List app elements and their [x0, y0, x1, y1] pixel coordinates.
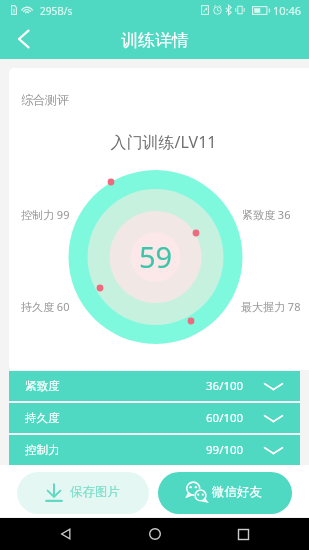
- staticText: 保存图片: [70, 484, 120, 500]
- staticText: 紧致度 36: [242, 207, 291, 222]
- button[interactable]: Back: [6, 22, 40, 56]
- staticText: 最大握力 78: [241, 299, 301, 314]
- staticText: 295B/s: [40, 4, 73, 18]
- button[interactable]: 保存图片: [17, 472, 149, 514]
- staticText: 紧致度: [25, 379, 60, 393]
- button[interactable]: 控制力: [9, 435, 300, 465]
- staticText: 持久度 60: [21, 299, 70, 314]
- staticText: 60/100: [206, 410, 244, 426]
- staticText: 入门训练/LV11: [9, 131, 309, 153]
- staticText: 59: [139, 237, 173, 276]
- button[interactable]: 微信好友: [158, 472, 292, 514]
- staticText: 持久度: [25, 411, 60, 425]
- staticText: 36/100: [206, 378, 244, 394]
- button[interactable]: Recent apps: [221, 518, 265, 550]
- button[interactable]: 紧致度: [9, 371, 300, 401]
- staticText: 微信好友: [212, 484, 262, 500]
- button[interactable]: Home: [133, 518, 177, 550]
- button[interactable]: Back: [44, 518, 88, 550]
- staticText: 99/100: [206, 442, 244, 458]
- staticText: 10:46: [273, 3, 302, 18]
- staticText: 控制力 99: [21, 207, 70, 222]
- staticText: 综合测评: [21, 92, 69, 107]
- staticText: 训练详情: [121, 30, 189, 51]
- button[interactable]: 持久度: [9, 403, 300, 433]
- staticText: 控制力: [25, 443, 60, 457]
